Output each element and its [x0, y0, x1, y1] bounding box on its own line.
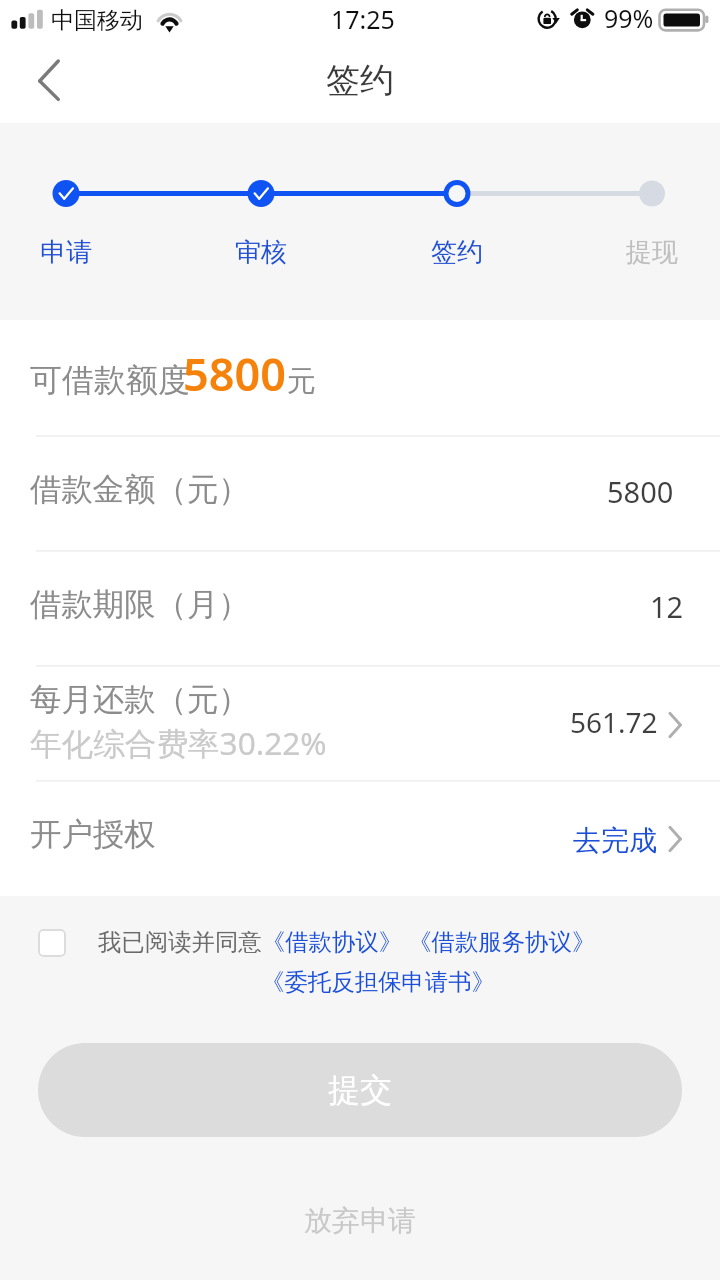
staticText: 放弃申请	[304, 1203, 416, 1238]
staticText: 签约	[431, 236, 483, 269]
button[interactable]: 签约	[407, 236, 507, 269]
staticText: 去完成	[573, 823, 657, 858]
staticText: 申请	[40, 236, 92, 269]
staticText: 可借款额度	[30, 360, 190, 400]
staticText: 元	[287, 363, 316, 400]
button[interactable]: 提现	[602, 236, 702, 269]
button[interactable]: 借款金额（元）	[0, 435, 720, 550]
staticText: 提交	[328, 1070, 392, 1110]
button[interactable]: 提交	[38, 1043, 682, 1137]
staticText: 签约	[326, 59, 394, 102]
button[interactable]: 放弃申请	[285, 1193, 435, 1247]
staticText: 借款金额（元）	[30, 470, 250, 510]
button[interactable]: Agree to terms checkbox	[38, 929, 66, 957]
button[interactable]: 我已阅读并同意《借款协议》 《借款服务协议》	[98, 925, 596, 957]
staticText: 《委托反担保申请书》	[261, 967, 495, 996]
staticText: 17:25	[331, 2, 395, 36]
button[interactable]: 申请	[16, 236, 116, 269]
staticText: 99%	[604, 1, 654, 35]
button[interactable]: 借款期限（月）	[0, 550, 720, 665]
staticText: 提现	[626, 236, 678, 269]
staticText: 5800	[183, 343, 286, 404]
button[interactable]: Back	[8, 46, 88, 123]
staticText: 12	[650, 587, 684, 626]
staticText: 5800	[607, 472, 674, 511]
button[interactable]: 开户授权	[0, 780, 720, 896]
button[interactable]: 《委托反担保申请书》	[261, 967, 495, 996]
staticText: 每月还款（元）	[30, 680, 250, 720]
staticText: 561.72	[570, 703, 658, 741]
staticText: 年化综合费率30.22%	[30, 721, 327, 764]
staticText: 我已阅读并同意《借款协议》 《借款服务协议》	[98, 925, 596, 957]
button[interactable]: 每月还款（元）	[0, 665, 720, 780]
staticText: 审核	[235, 236, 287, 269]
staticText: 开户授权	[30, 815, 156, 855]
staticText: 中国移动	[51, 6, 143, 35]
button[interactable]: 审核	[211, 236, 311, 269]
staticText: 借款期限（月）	[30, 585, 250, 625]
